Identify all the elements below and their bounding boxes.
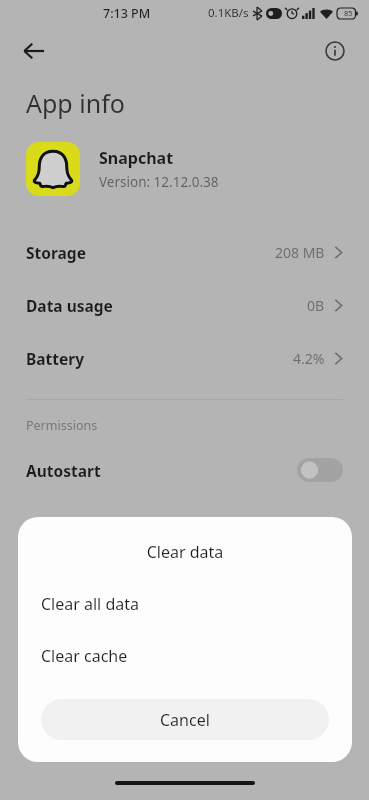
button[interactable]: Back bbox=[14, 31, 54, 71]
staticText: Version: 12.12.0.38 bbox=[99, 173, 219, 191]
button[interactable]: Battery bbox=[0, 332, 369, 385]
staticText: Cancel bbox=[160, 709, 210, 731]
button[interactable]: Cancel bbox=[41, 699, 329, 740]
staticText: 0.1KB/s bbox=[208, 5, 249, 21]
staticText: Snapchat bbox=[99, 147, 174, 169]
button[interactable]: Data usage bbox=[0, 279, 369, 332]
staticText: 7:13 PM bbox=[103, 5, 151, 22]
staticText: Autostart bbox=[26, 460, 101, 481]
staticText: Data usage bbox=[26, 295, 113, 316]
staticText: 0B bbox=[307, 296, 325, 315]
button[interactable]: Autostart bbox=[0, 450, 369, 490]
button[interactable]: Clear all data bbox=[18, 589, 352, 619]
staticText: Storage bbox=[26, 242, 86, 263]
staticText: Clear cache bbox=[41, 645, 128, 667]
staticText: App info bbox=[26, 86, 125, 120]
staticText: Clear all data bbox=[41, 593, 139, 615]
staticText: Battery bbox=[26, 348, 85, 369]
button[interactable]: Storage bbox=[0, 226, 369, 279]
staticText: 4.2% bbox=[293, 349, 325, 368]
button[interactable]: Clear cache bbox=[18, 641, 352, 671]
staticText: 85 bbox=[344, 8, 353, 18]
staticText: Clear data bbox=[18, 541, 352, 563]
staticText: Permissions bbox=[26, 417, 98, 434]
staticText: 208 MB bbox=[275, 243, 325, 262]
button[interactable]: App details bbox=[315, 31, 355, 71]
